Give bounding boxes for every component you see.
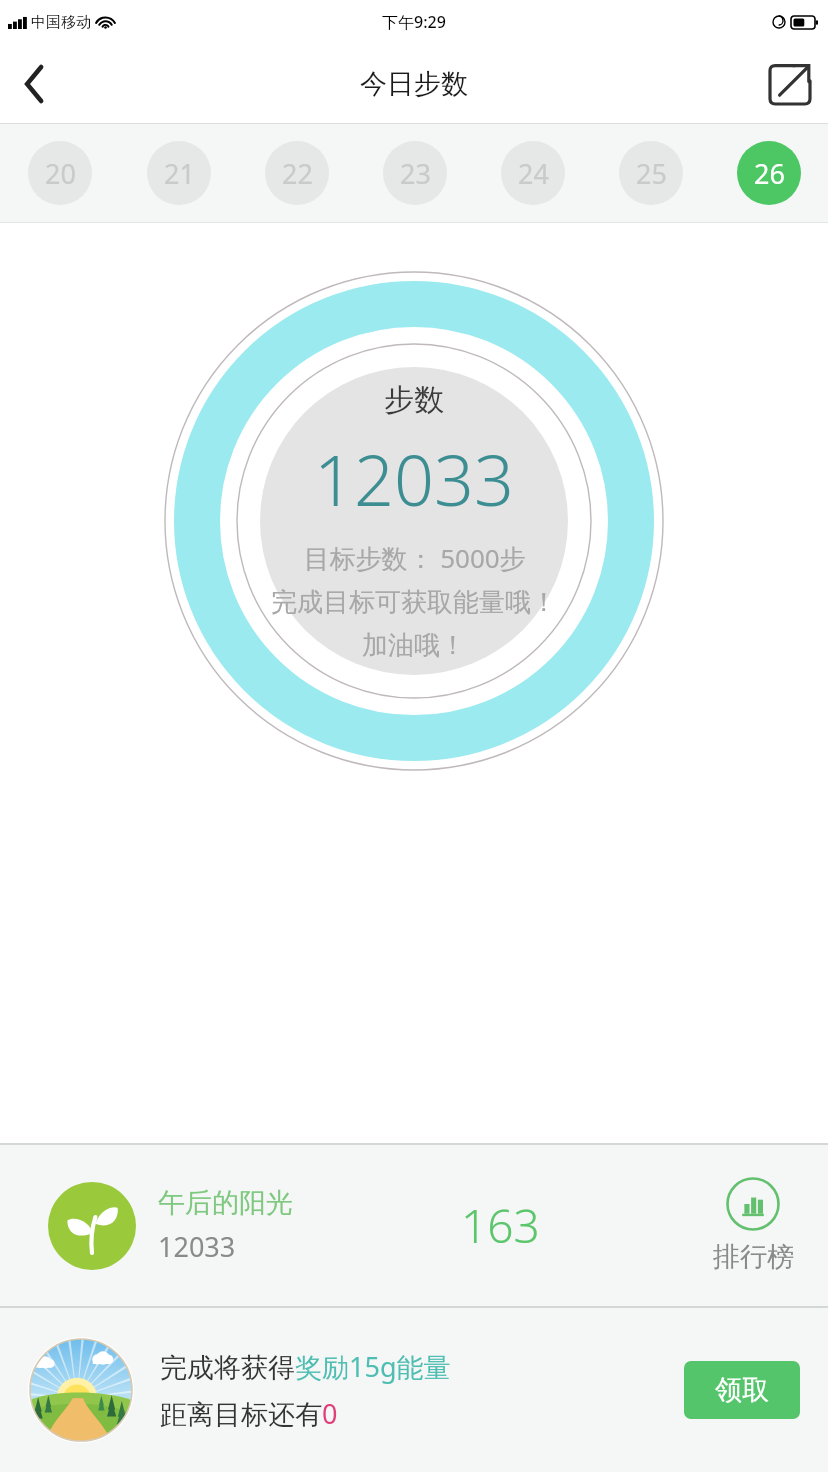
button[interactable]: Share (752, 46, 828, 122)
staticText: 中国移动 (31, 13, 91, 32)
button[interactable]: 23 (383, 141, 447, 205)
staticText: 23 (400, 155, 431, 192)
button[interactable]: 24 (501, 141, 565, 205)
staticText: 12033 (158, 1228, 236, 1265)
staticText: 20 (45, 155, 76, 192)
button[interactable]: 排行榜 (678, 1177, 828, 1274)
staticText: 完成目标可获取能量哦！ (271, 586, 557, 619)
staticText: 今日步数 (360, 67, 468, 101)
staticText: 领取 (715, 1373, 769, 1407)
staticText: 24 (518, 155, 549, 192)
staticText: 步数 (384, 381, 444, 419)
staticText: 排行榜 (713, 1240, 794, 1274)
staticText: 12033 (314, 431, 514, 526)
staticText: 163 (461, 1194, 540, 1257)
staticText: 21 (164, 155, 195, 192)
button[interactable]: 26 (737, 141, 801, 205)
button[interactable]: 21 (147, 141, 211, 205)
staticText: 完成将获得奖励15g能量 (160, 1348, 451, 1385)
button[interactable]: Avatar (48, 1182, 136, 1270)
button[interactable]: 20 (28, 141, 92, 205)
staticText: 22 (282, 155, 313, 192)
staticText: 26 (754, 155, 785, 192)
button[interactable]: 完成将获得奖励15g能量 (160, 1348, 684, 1432)
button[interactable]: Reward (28, 1337, 134, 1443)
staticText: 目标步数： 5000步 (303, 540, 526, 576)
staticText: 25 (636, 155, 667, 192)
staticText: 加油哦！ (362, 629, 466, 662)
staticText: 距离目标还有0 (160, 1395, 338, 1432)
button[interactable]: Back (0, 49, 70, 119)
staticText: 下午9:29 (382, 11, 446, 33)
button[interactable]: 领取 (684, 1361, 800, 1419)
staticText: 午后的阳光 (158, 1186, 293, 1220)
button[interactable]: 午后的阳光 (158, 1186, 293, 1265)
button[interactable]: 25 (619, 141, 683, 205)
button[interactable]: 22 (265, 141, 329, 205)
